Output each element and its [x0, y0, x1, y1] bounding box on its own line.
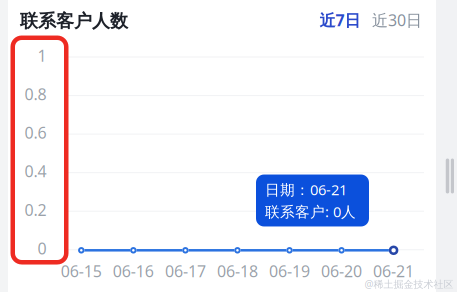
- staticText: 近7日: [319, 9, 360, 31]
- staticText: 0.2: [24, 199, 46, 221]
- staticText: 联系客户: 0人: [265, 201, 356, 221]
- staticText: 06-21: [373, 260, 414, 282]
- staticText: 06-16: [113, 260, 154, 282]
- staticText: @稀土掘金技术社区: [364, 277, 453, 291]
- staticText: 0: [37, 237, 46, 259]
- staticText: 联系客户人数: [20, 10, 128, 32]
- staticText: 1: [37, 45, 46, 66]
- staticText: 0.4: [24, 160, 46, 182]
- staticText: 日期：06-21: [265, 179, 347, 199]
- button[interactable]: 近30日: [371, 9, 423, 31]
- button[interactable]: 近7日: [318, 9, 362, 31]
- staticText: 0.6: [24, 122, 46, 143]
- staticText: 06-20: [321, 260, 362, 282]
- staticText: 06-18: [217, 260, 258, 282]
- staticText: 06-19: [269, 260, 310, 282]
- staticText: 06-17: [165, 260, 206, 282]
- staticText: 近30日: [372, 9, 422, 31]
- staticText: 0.8: [24, 83, 46, 105]
- staticText: 06-15: [61, 260, 102, 282]
